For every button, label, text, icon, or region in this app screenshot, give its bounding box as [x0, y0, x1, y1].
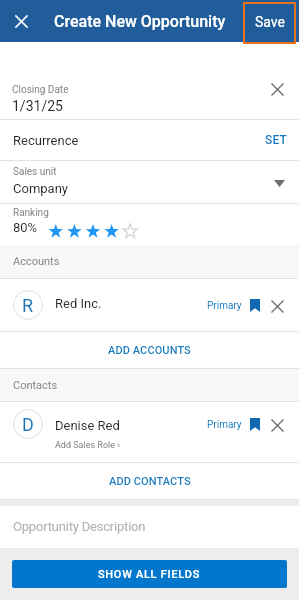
staticText: R: [22, 295, 34, 316]
staticText: SET: [265, 133, 288, 147]
staticText: Red Inc.: [55, 296, 102, 311]
button[interactable]: SHOW ALL FIELDS: [12, 560, 287, 588]
staticText: ADD ACCOUNTS: [108, 344, 191, 357]
button[interactable]: Primary flag: [241, 415, 260, 434]
staticText: ADD CONTACTS: [109, 475, 191, 488]
button[interactable]: Remove: [266, 414, 289, 437]
button[interactable]: Remove: [266, 295, 289, 318]
button[interactable]: D: [0, 402, 299, 462]
staticText: Denise Red: [55, 418, 120, 433]
staticText: Sales unit: [13, 166, 57, 178]
staticText: 1/31/25: [12, 98, 63, 114]
staticText: Closing Date: [12, 84, 69, 96]
button[interactable]: Close: [0, 0, 43, 43]
staticText: Company: [13, 181, 68, 196]
staticText: SHOW ALL FIELDS: [98, 568, 201, 581]
staticText: Create New Opportunity: [54, 12, 226, 31]
staticText: Add Sales Role ›: [55, 440, 120, 451]
staticText: Opportunity Description: [13, 519, 146, 534]
button[interactable]: Save: [243, 2, 296, 44]
staticText: Ranking: [13, 207, 49, 219]
button[interactable]: Clear closing date: [266, 78, 289, 101]
staticText: Accounts: [13, 255, 60, 268]
staticText: Primary: [207, 419, 242, 431]
button[interactable]: Closing Date: [0, 42, 299, 119]
button[interactable]: Primary flag: [241, 296, 260, 315]
staticText: Recurrence: [13, 133, 79, 148]
button[interactable]: ADD ACCOUNTS: [0, 332, 299, 368]
staticText: 80%: [13, 220, 38, 235]
button[interactable]: ADD CONTACTS: [0, 463, 299, 499]
button[interactable]: Opportunity Description: [0, 506, 299, 547]
staticText: Save: [255, 14, 285, 30]
button[interactable]: R: [0, 279, 299, 331]
button[interactable]: Recurrence: [0, 120, 299, 160]
button[interactable]: Ranking: [0, 204, 299, 245]
staticText: Primary: [207, 300, 242, 312]
button[interactable]: Sales unit: [0, 161, 299, 203]
staticText: D: [22, 414, 34, 435]
staticText: Contacts: [13, 379, 58, 392]
